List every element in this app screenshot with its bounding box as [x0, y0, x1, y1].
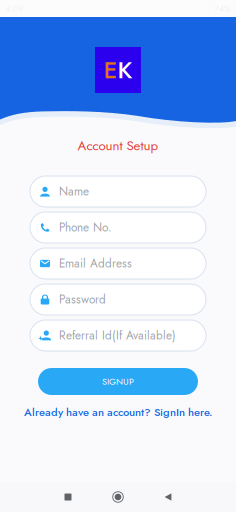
staticText: Password: [59, 291, 106, 308]
staticText: Referral Id(If Available): [59, 327, 176, 344]
button[interactable]: Password: [30, 284, 206, 315]
button[interactable]: Back: [155, 484, 181, 510]
button[interactable]: Home: [105, 484, 131, 510]
staticText: Account Setup: [77, 136, 158, 155]
staticText: SIGNUP: [102, 375, 134, 388]
staticText: Phone No.: [59, 219, 112, 236]
staticText: K: [117, 53, 132, 87]
button[interactable]: Referral Id(If Available): [30, 320, 206, 351]
button[interactable]: Phone No.: [30, 212, 206, 243]
button[interactable]: Email Address: [30, 248, 206, 279]
button[interactable]: Recent apps: [55, 484, 81, 510]
button[interactable]: Name: [30, 176, 206, 207]
button[interactable]: Already have an account? SignIn here.: [24, 404, 212, 420]
staticText: E: [103, 53, 117, 87]
staticText: Email Address: [59, 255, 132, 272]
staticText: Already have an account? SignIn here.: [24, 404, 212, 420]
button[interactable]: SIGNUP: [38, 368, 198, 395]
staticText: Name: [59, 183, 89, 200]
